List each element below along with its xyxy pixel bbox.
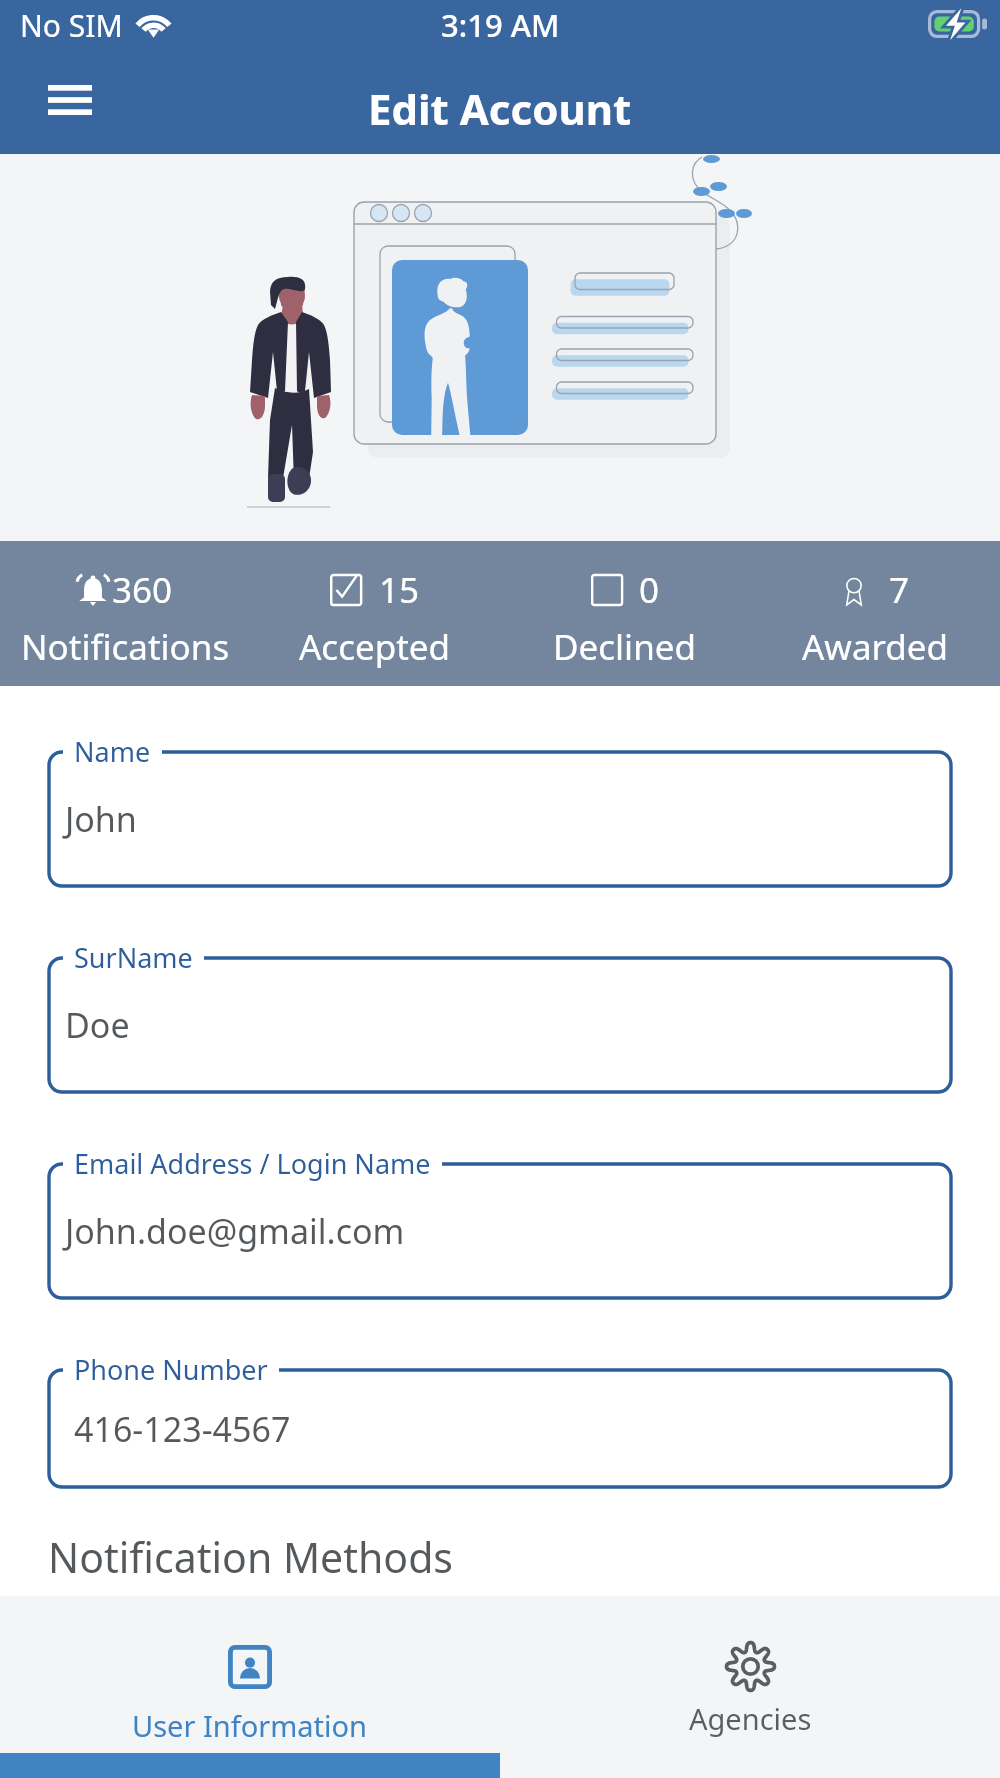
staticText: Email Address / Login Name (74, 1145, 431, 1182)
button[interactable] (49, 752, 951, 886)
staticText: Agencies (689, 1699, 812, 1738)
staticText: Notification Methods (48, 1529, 453, 1585)
button[interactable]: Agencies (500, 1596, 1000, 1738)
staticText: Declined (553, 623, 697, 671)
button[interactable]: Open navigation menu (26, 68, 114, 132)
button[interactable]: User Information (0, 1596, 500, 1745)
staticText: 3:19 AM (441, 4, 560, 46)
staticText: Phone Number (74, 1351, 268, 1388)
staticText: John (65, 796, 137, 842)
staticText: User Information (132, 1706, 368, 1745)
staticText: 416-123-4567 (74, 1406, 291, 1452)
button[interactable]: 360 (0, 556, 250, 671)
staticText: 7 (889, 566, 910, 614)
staticText: Doe (65, 1002, 130, 1048)
button[interactable] (49, 958, 951, 1092)
staticText: Name (74, 733, 151, 770)
staticText: Awarded (802, 623, 949, 671)
button[interactable]: 7 (750, 556, 1000, 671)
staticText: 0 (639, 566, 660, 614)
staticText: No SIM (20, 5, 123, 46)
staticText: 360 (112, 566, 173, 614)
staticText: 15 (379, 566, 420, 614)
staticText: Edit Account (368, 80, 632, 137)
staticText: SurName (74, 939, 193, 976)
staticText: Accepted (299, 623, 451, 671)
button[interactable]: 0 (500, 556, 750, 671)
button[interactable] (49, 1370, 951, 1487)
button[interactable]: 15 (250, 556, 500, 671)
staticText: John.doe@gmail.com (65, 1208, 405, 1254)
staticText: Notifications (21, 623, 230, 671)
button[interactable] (49, 1164, 951, 1298)
